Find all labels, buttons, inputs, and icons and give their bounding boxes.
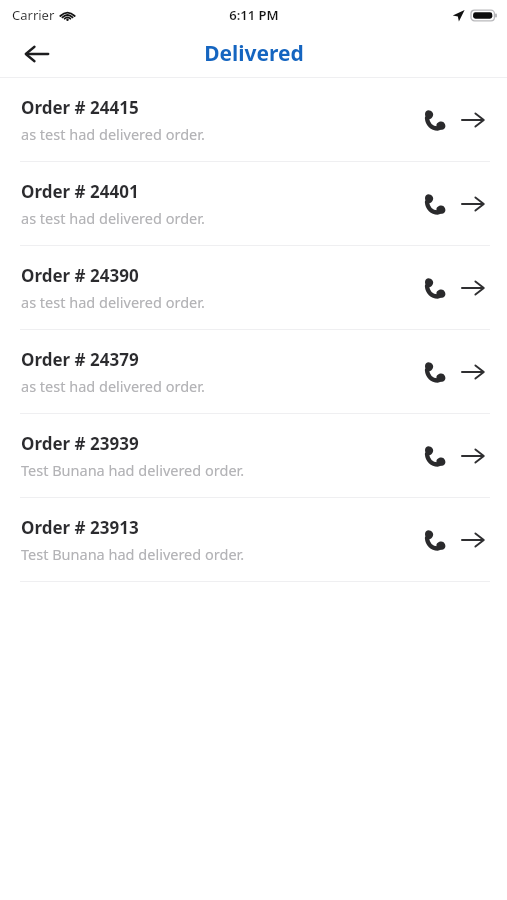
button[interactable]: Call — [418, 103, 452, 137]
button[interactable]: Order # 24379 — [0, 330, 507, 414]
button[interactable]: Open order details — [456, 439, 490, 473]
button[interactable]: Open order details — [456, 523, 490, 557]
staticText: as test had delivered order. — [21, 124, 205, 144]
staticText: Order # 24415 — [21, 96, 139, 119]
button[interactable]: Order # 24390 — [0, 246, 507, 330]
staticText: Order # 24401 — [21, 180, 139, 203]
staticText: as test had delivered order. — [21, 376, 205, 396]
button[interactable]: Open order details — [456, 103, 490, 137]
button[interactable]: Open order details — [456, 271, 490, 305]
button[interactable]: Order # 23939 — [0, 414, 507, 498]
button[interactable]: Call — [418, 523, 452, 557]
button[interactable]: Order # 24401 — [0, 162, 507, 246]
staticText: Test Bunana had delivered order. — [21, 460, 245, 480]
button[interactable]: Call — [418, 271, 452, 305]
button[interactable]: Call — [418, 355, 452, 389]
staticText: Carrier — [12, 6, 55, 24]
staticText: as test had delivered order. — [21, 292, 205, 312]
staticText: Test Bunana had delivered order. — [21, 544, 245, 564]
staticText: Order # 23939 — [21, 432, 139, 455]
staticText: Order # 24379 — [21, 348, 139, 371]
staticText: Order # 23913 — [21, 516, 139, 539]
staticText: 6:11 PM — [229, 6, 279, 24]
button[interactable]: Open order details — [456, 355, 490, 389]
staticText: as test had delivered order. — [21, 208, 205, 228]
button[interactable]: Order # 24415 — [0, 78, 507, 162]
button[interactable]: Open order details — [456, 187, 490, 221]
button[interactable]: Call — [418, 187, 452, 221]
button[interactable]: Back — [14, 32, 58, 76]
staticText: Delivered — [204, 39, 304, 68]
button[interactable]: Call — [418, 439, 452, 473]
staticText: Order # 24390 — [21, 264, 139, 287]
button[interactable]: Order # 23913 — [0, 498, 507, 582]
